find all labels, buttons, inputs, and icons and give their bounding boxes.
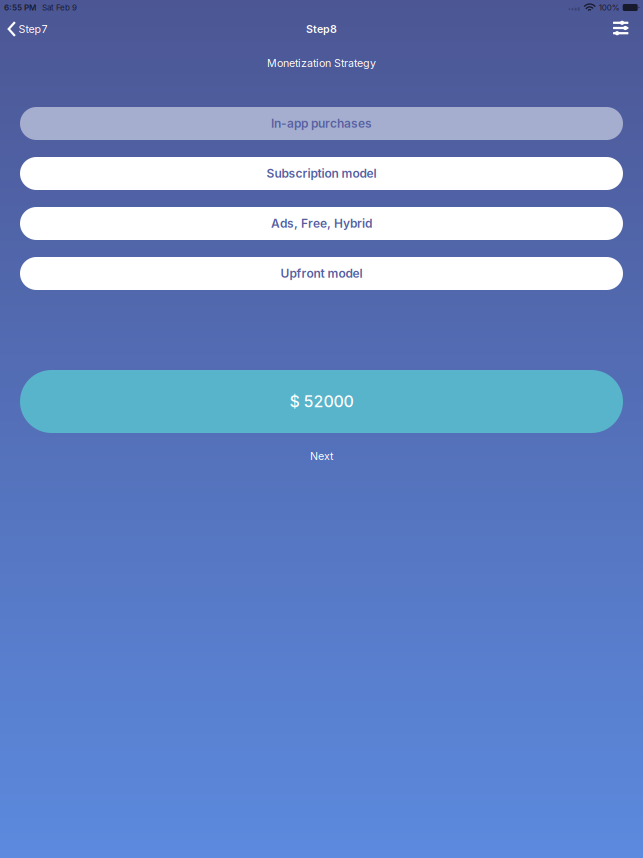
staticText: Step7: [18, 22, 47, 35]
button[interactable]: Ads, Free, Hybrid: [20, 207, 623, 240]
staticText: Step8: [306, 22, 337, 35]
button[interactable]: Adjust settings: [605, 15, 636, 43]
staticText: $ 52000: [289, 392, 353, 411]
staticText: 6:55 PM: [4, 3, 36, 12]
button[interactable]: Next: [284, 433, 359, 471]
button[interactable]: Step7: [0, 15, 55, 43]
staticText: In-app purchases: [271, 116, 372, 131]
button[interactable]: In-app purchases: [20, 107, 623, 140]
staticText: Subscription model: [266, 166, 376, 181]
button[interactable]: Upfront model: [20, 257, 623, 290]
staticText: Monetization Strategy: [267, 56, 376, 69]
button[interactable]: Subscription model: [20, 157, 623, 190]
staticText: Next: [310, 449, 333, 462]
staticText: Upfront model: [280, 266, 362, 281]
staticText: 100%: [599, 3, 620, 12]
button[interactable]: $ 52000: [20, 370, 623, 433]
staticText: Sat Feb 9: [42, 3, 77, 12]
staticText: Ads, Free, Hybrid: [271, 216, 372, 231]
